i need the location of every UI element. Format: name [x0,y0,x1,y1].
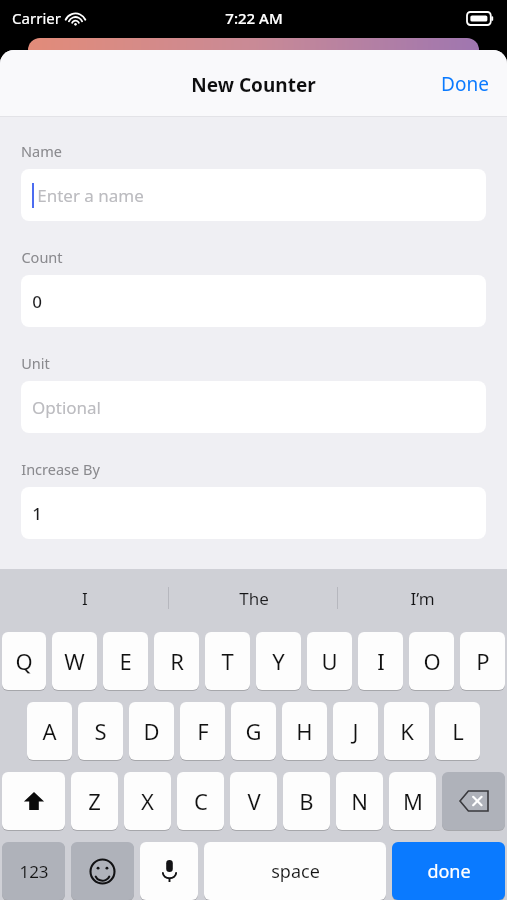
staticText: Increase By [21,459,100,479]
other: Emoji [71,842,134,900]
button[interactable]: K [384,702,429,760]
button[interactable]: S [78,702,123,760]
button[interactable]: Q [2,632,46,690]
button[interactable]: X [124,772,171,830]
staticText: A [42,716,57,746]
button[interactable]: P [460,632,505,690]
staticText: N [351,786,368,816]
button[interactable]: L [435,702,480,760]
staticText: Z [88,786,101,816]
other: Dictate [140,842,198,900]
staticText: 0 [32,290,42,313]
button[interactable]: Done [423,59,507,109]
staticText: D [143,716,160,746]
button[interactable]: J [333,702,378,760]
button[interactable]: D [129,702,174,760]
button[interactable]: Z [71,772,118,830]
staticText: B [299,786,314,816]
staticText: Enter a name [37,184,144,207]
button[interactable]: Enter a name [21,169,486,221]
staticText: I’m [410,587,435,610]
staticText: Done [441,71,489,97]
button[interactable]: C [177,772,224,830]
staticText: The [239,587,269,610]
staticText: G [245,716,262,746]
button[interactable]: H [282,702,327,760]
button[interactable]: E [103,632,148,690]
button[interactable]: 0 [21,275,486,327]
button[interactable]: Optional [21,381,486,433]
button[interactable]: done [392,842,505,900]
staticText: Unit [21,353,50,373]
staticText: done [427,859,471,884]
staticText: P [476,646,490,676]
staticText: Q [15,646,33,676]
staticText: H [296,716,313,746]
staticText: 7:22 AM [225,8,283,28]
button[interactable]: G [231,702,276,760]
button[interactable]: W [52,632,97,690]
staticText: S [94,716,107,746]
staticText: E [119,646,132,676]
button[interactable]: M [389,772,436,830]
button[interactable]: 123 [2,842,65,900]
button[interactable]: U [307,632,352,690]
button[interactable]: space [204,842,386,900]
staticText: T [221,646,234,676]
staticText: O [423,646,441,676]
staticText: New Counter [191,72,316,98]
button[interactable] [140,842,198,900]
button[interactable]: T [205,632,250,690]
button[interactable]: F [180,702,225,760]
staticText: U [321,646,338,676]
button[interactable]: The [169,569,338,627]
staticText: L [452,716,464,746]
staticText: Optional [32,396,101,419]
staticText: 123 [19,860,49,883]
button[interactable]: V [230,772,277,830]
staticText: Name [21,141,62,161]
other: Shift [2,772,65,830]
button[interactable]: O [409,632,454,690]
staticText: X [141,786,154,816]
staticText: I [82,587,88,610]
staticText: 1 [32,502,42,525]
button[interactable]: A [27,702,72,760]
staticText: Count [21,247,63,267]
button[interactable]: R [154,632,199,690]
button[interactable] [71,842,134,900]
staticText: F [197,716,209,746]
button[interactable]: Y [256,632,301,690]
button[interactable]: I [0,569,169,627]
staticText: V [247,786,261,816]
button[interactable] [2,772,65,830]
button[interactable]: I [358,632,403,690]
staticText: I [377,646,385,676]
staticText: W [64,646,85,676]
button[interactable]: I’m [338,569,507,627]
button[interactable]: N [336,772,383,830]
button[interactable]: 1 [21,487,486,539]
staticText: C [194,786,208,816]
staticText: K [400,716,414,746]
staticText: J [352,716,359,746]
staticText: M [403,786,423,816]
button[interactable]: B [283,772,330,830]
staticText: R [170,646,184,676]
staticText: Y [272,646,285,676]
staticText: space [271,859,320,884]
button[interactable] [442,772,505,830]
other: Backspace [442,772,505,830]
staticText: Carrier [12,8,61,28]
